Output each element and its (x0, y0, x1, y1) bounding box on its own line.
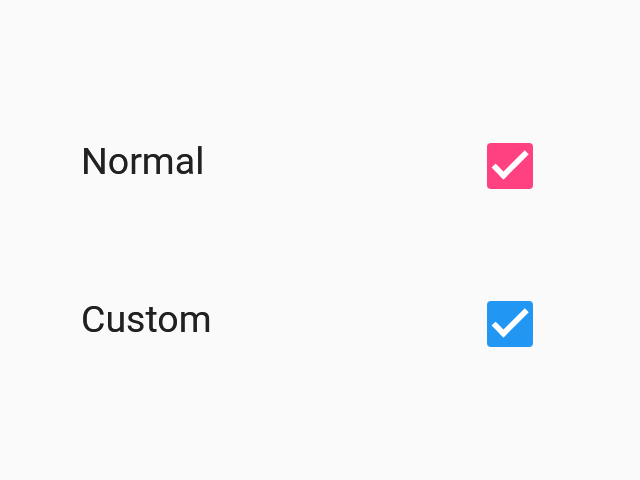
staticText: Custom (81, 297, 212, 341)
button[interactable]: Custom (0, 301, 640, 347)
button[interactable]: Custom checkbox, checked (487, 301, 533, 347)
staticText: Normal (81, 139, 205, 183)
button[interactable]: Normal (0, 143, 640, 189)
staticText: Custom (81, 297, 212, 341)
button[interactable]: Normal checkbox, checked (487, 143, 533, 189)
staticText: Normal (81, 139, 205, 183)
